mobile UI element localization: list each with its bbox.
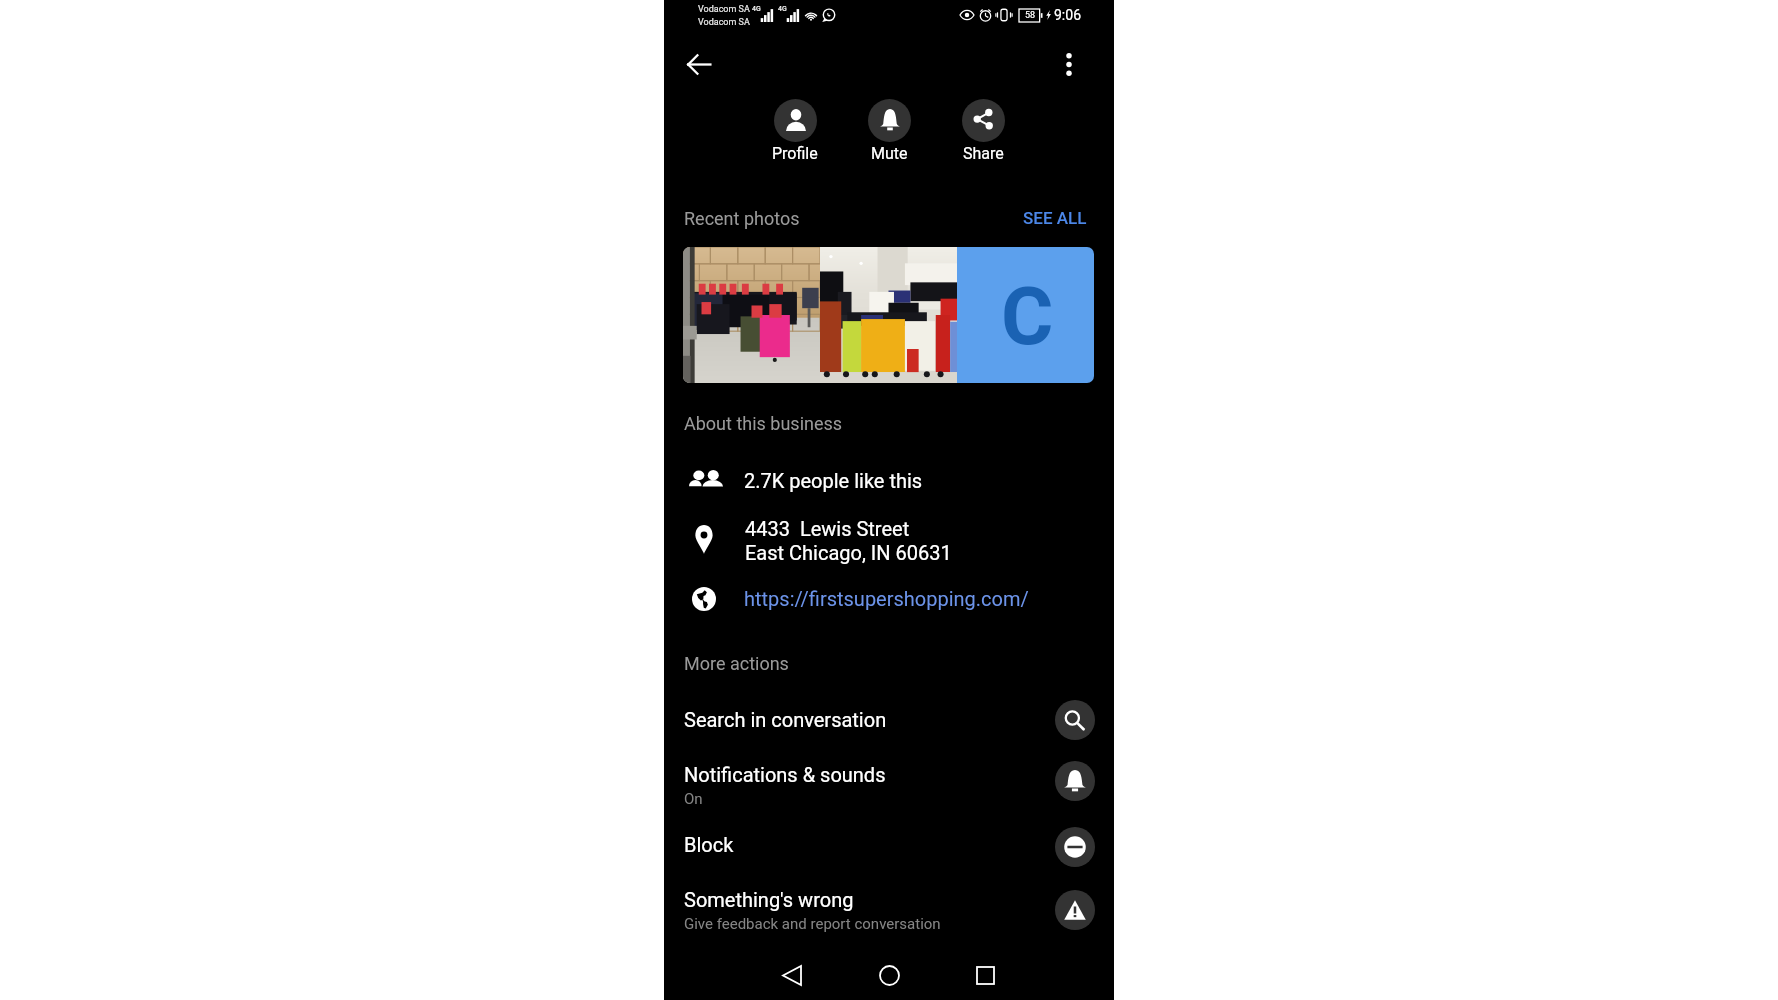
staticText: East Chicago, IN 60631 — [745, 541, 952, 564]
button[interactable] — [664, 689, 1114, 751]
staticText: More actions — [684, 653, 789, 674]
staticText: 2.7K people like this — [744, 469, 923, 492]
staticText: SEE ALL — [1023, 208, 1087, 228]
button[interactable]: Photo 2 — [820, 247, 957, 383]
button[interactable]: Home — [873, 959, 905, 991]
button[interactable] — [664, 816, 1114, 878]
staticText: 58 — [1025, 10, 1036, 21]
staticText: Something's wrong — [684, 888, 854, 911]
button[interactable] — [857, 92, 921, 164]
staticText: Profile — [772, 144, 818, 163]
button[interactable] — [664, 879, 1114, 941]
staticText: On — [684, 790, 703, 808]
staticText: C — [1001, 270, 1054, 364]
button[interactable]: Back — [683, 51, 715, 78]
button[interactable]: C — [957, 247, 1094, 383]
staticText: Notifications & sounds — [684, 763, 886, 786]
staticText: 4433 Lewis Street — [745, 517, 910, 540]
button[interactable] — [763, 92, 827, 164]
button[interactable]: SEE ALL — [1012, 201, 1098, 235]
staticText: Share — [963, 144, 1004, 163]
staticText: Vodacom SA — [698, 4, 750, 15]
staticText: Give feedback and report conversation — [684, 915, 941, 933]
button[interactable]: More options — [1051, 46, 1087, 82]
staticText: About this business — [684, 413, 843, 434]
staticText: Recent photos — [684, 208, 800, 229]
staticText: Vodacom SA — [698, 17, 750, 28]
button[interactable] — [664, 750, 1114, 812]
staticText: Search in conversation — [684, 708, 887, 731]
button[interactable]: Photo 1 — [683, 247, 820, 383]
staticText: Mute — [871, 144, 908, 163]
button[interactable] — [951, 92, 1015, 164]
button[interactable]: Recents — [969, 959, 1001, 991]
staticText: 4G — [778, 5, 787, 13]
staticText: 9:06 — [1054, 7, 1081, 23]
staticText: 4G — [752, 5, 761, 13]
staticText: https://firstsupershopping.com/ — [744, 587, 1029, 610]
staticText: Block — [684, 833, 734, 856]
button[interactable]: Back — [776, 959, 808, 991]
